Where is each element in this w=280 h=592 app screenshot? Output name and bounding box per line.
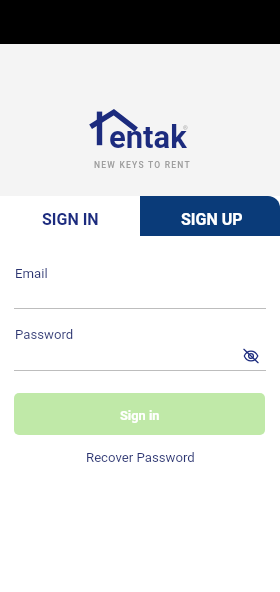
staticText: Password [15,327,74,342]
staticText: SIGN UP [181,210,243,229]
staticText: SIGN IN [42,210,99,229]
staticText: Recover Password [86,450,195,465]
button[interactable]: Recover Password [80,447,201,468]
button[interactable]: SIGN IN [0,196,140,236]
staticText: ® [183,124,188,131]
staticText: entak [109,119,187,155]
button[interactable]: Sign in [14,393,265,435]
button[interactable]: SIGN UP [140,196,280,236]
staticText: Email [15,266,48,281]
staticText: NEW KEYS TO RENT [94,160,191,170]
staticText: Sign in [120,408,160,423]
button[interactable]: Show password [236,341,265,370]
